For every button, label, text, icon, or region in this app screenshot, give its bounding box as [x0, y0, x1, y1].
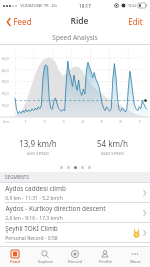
staticText: Aydos - Kurtkoy direction descent: [5, 204, 106, 213]
staticText: Ride: [70, 15, 89, 27]
staticText: Feed: [10, 259, 20, 265]
staticText: km: [3, 119, 9, 124]
staticText: Feed: [13, 16, 32, 27]
staticText: 3: [62, 119, 65, 124]
staticText: %32: [128, 3, 137, 9]
button[interactable]: More: [120, 247, 150, 267]
staticText: Aydos caddesi climb: [5, 184, 66, 193]
staticText: 4: [81, 119, 84, 124]
staticText: 2: [43, 119, 46, 124]
staticText: Record: [68, 259, 82, 265]
button[interactable]: Feed: [0, 247, 30, 267]
staticText: 54 km/h: [97, 138, 128, 149]
staticText: 20,0: [1, 91, 9, 96]
staticText: Edit: [128, 16, 143, 27]
button[interactable]: Record: [60, 247, 90, 267]
staticText: VODAFONE TR: [20, 3, 49, 9]
staticText: 5: [100, 119, 103, 124]
button[interactable]: Aydos caddesi climb: [0, 183, 150, 202]
button[interactable]: 13,9 km/h: [0, 138, 75, 157]
staticText: More: [130, 259, 141, 265]
staticText: Personal Record - 0:58: [5, 235, 58, 242]
staticText: Şeyhli TOKİ Climb: [5, 224, 58, 233]
staticText: MAX SPEED: [101, 151, 124, 157]
staticText: 10,0: [1, 103, 9, 108]
staticText: 7: [138, 119, 141, 124]
button[interactable]: Explore: [30, 247, 60, 267]
staticText: SEGMENTS: [5, 174, 29, 180]
staticText: 0,9 km - 11:31 - 5,2 km/h: [5, 195, 63, 202]
staticText: 1: [24, 119, 27, 124]
button[interactable]: Aydos - Kurtkoy direction descent: [0, 203, 150, 222]
staticText: 6: [119, 119, 122, 124]
button[interactable]: Edit: [126, 13, 145, 30]
staticText: 13,9 km/h: [19, 138, 57, 149]
staticText: Speed Analysis: [52, 33, 98, 42]
button[interactable]: Şeyhli TOKİ Climb: [0, 223, 150, 242]
staticText: 50,0: [1, 56, 9, 61]
staticText: 2,6 km - 9:16 - 17,3 km/h: [5, 215, 63, 222]
staticText: 40,0: [1, 68, 9, 73]
button[interactable]: Feed: [5, 13, 34, 30]
staticText: AVG SPEED: [27, 151, 49, 157]
staticText: 30,0: [1, 79, 9, 84]
staticText: Explore: [38, 259, 53, 265]
staticText: Profile: [99, 259, 112, 265]
staticText: 4G: [51, 3, 57, 9]
button[interactable]: Profile: [90, 247, 120, 267]
button[interactable]: 54 km/h: [75, 138, 150, 157]
staticText: 19:17: [79, 3, 91, 9]
